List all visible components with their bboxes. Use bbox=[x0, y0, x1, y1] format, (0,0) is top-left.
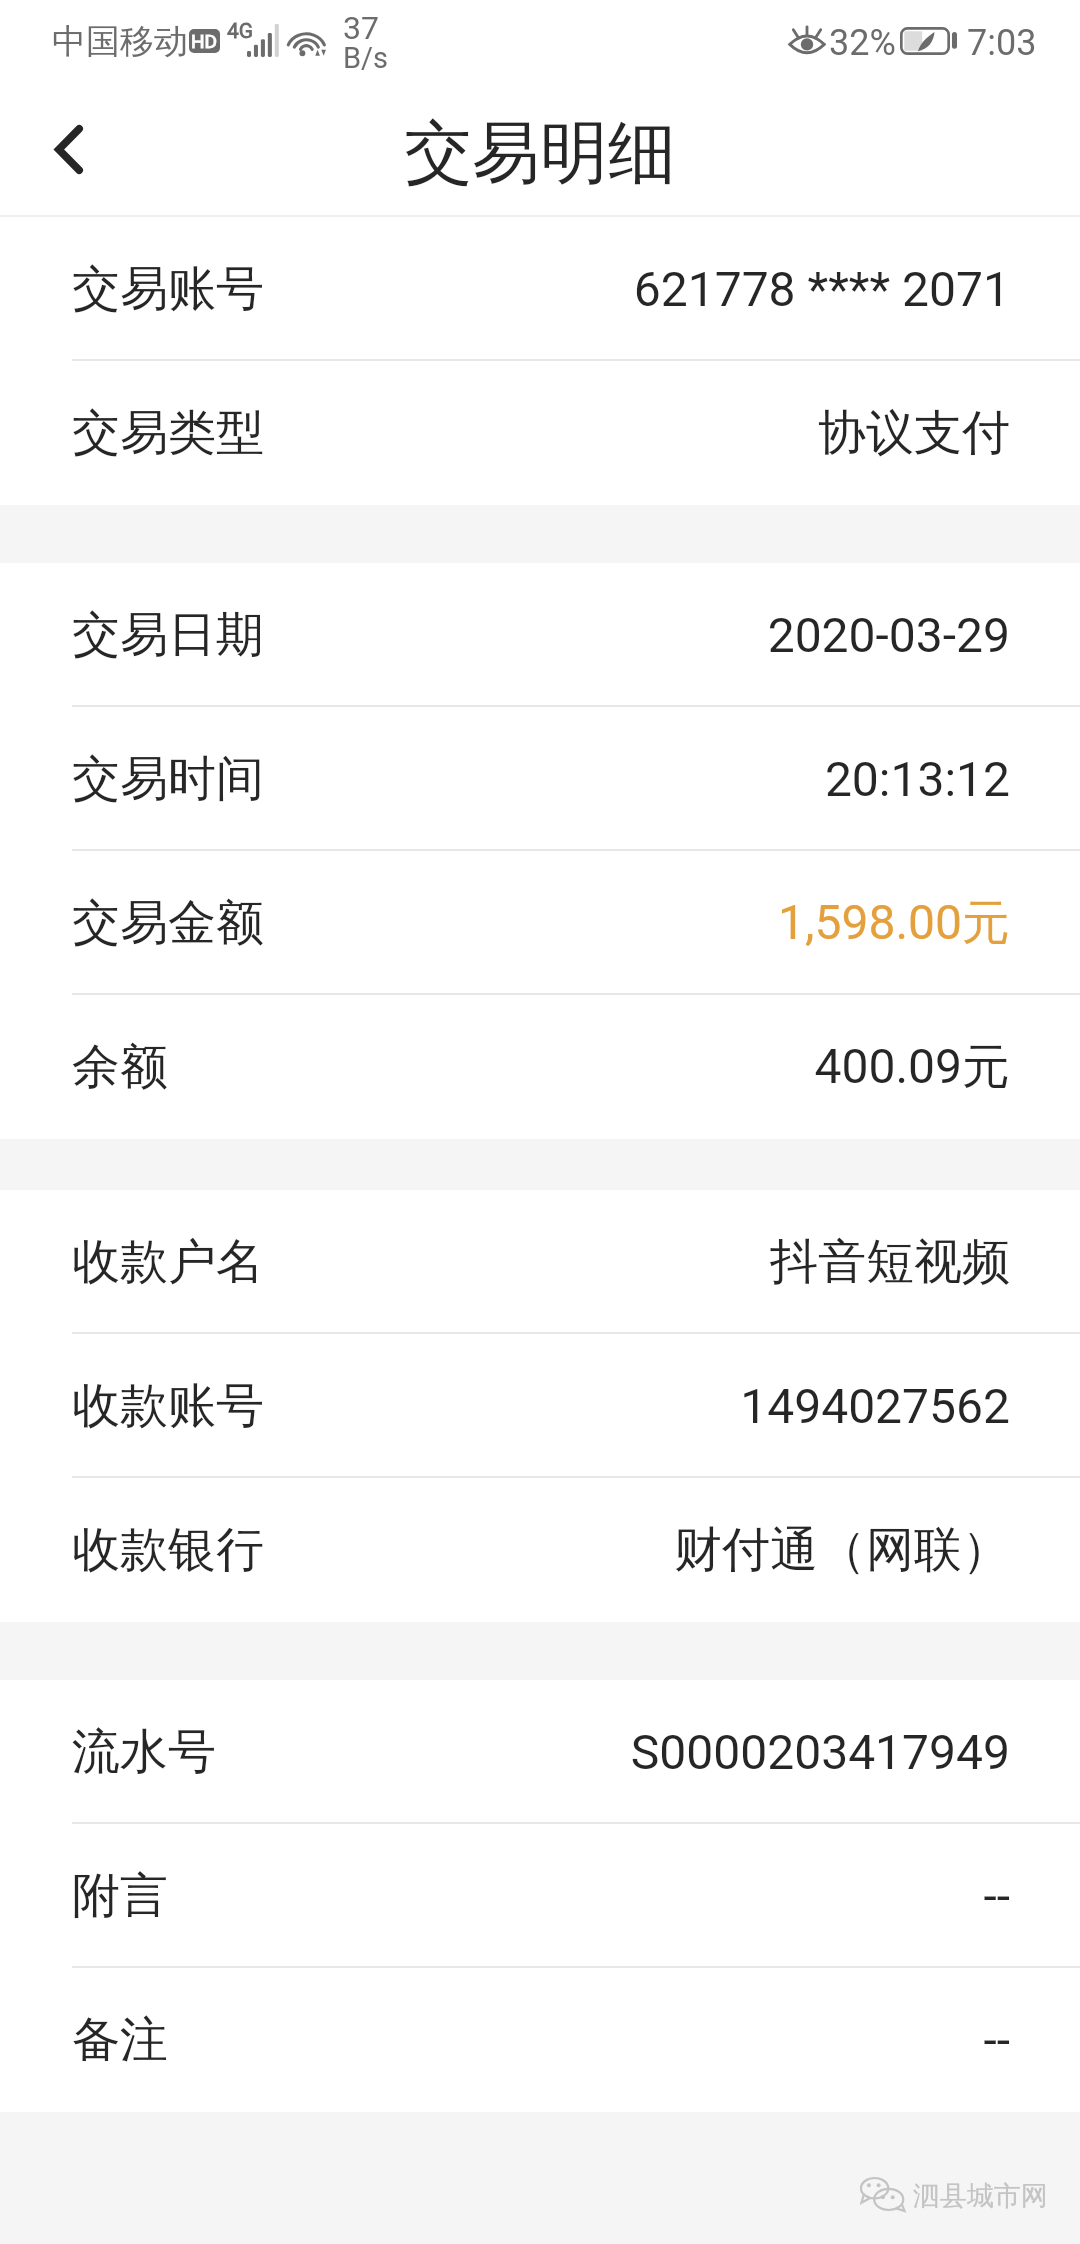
staticText: 交易金额 bbox=[72, 893, 264, 953]
staticText: 交易账号 bbox=[72, 259, 264, 319]
staticText: 400.09元 bbox=[814, 1037, 1010, 1097]
button[interactable]: 备注 bbox=[0, 1968, 1080, 2112]
staticText: 备注 bbox=[72, 2010, 168, 2070]
staticText: 37 bbox=[343, 9, 379, 47]
staticText: 4G bbox=[227, 19, 254, 44]
staticText: 32% bbox=[829, 22, 896, 64]
staticText: 中国移动 bbox=[52, 20, 188, 63]
staticText: HD bbox=[191, 30, 218, 52]
staticText: 交易时间 bbox=[72, 749, 264, 809]
staticText: 协议支付 bbox=[818, 403, 1010, 463]
button[interactable]: 交易类型 bbox=[0, 361, 1080, 505]
staticText: 余额 bbox=[72, 1037, 168, 1097]
staticText: 抖音短视频 bbox=[770, 1232, 1010, 1292]
staticText: 621778 **** 2071 bbox=[633, 261, 1010, 317]
staticText: 2020-03-29 bbox=[767, 607, 1010, 663]
button[interactable]: 流水号 bbox=[0, 1680, 1080, 1824]
button[interactable]: 收款银行 bbox=[0, 1478, 1080, 1622]
staticText: S0000203417949 bbox=[630, 1724, 1010, 1780]
staticText: 财付通（网联） bbox=[674, 1520, 1010, 1580]
staticText: 20:13:12 bbox=[824, 751, 1010, 807]
staticText: 流水号 bbox=[72, 1722, 216, 1782]
staticText: -- bbox=[983, 2012, 1010, 2068]
staticText: 1,598.00元 bbox=[778, 893, 1010, 953]
staticText: 交易日期 bbox=[72, 605, 264, 665]
staticText: 收款账号 bbox=[72, 1376, 264, 1436]
staticText: 交易类型 bbox=[72, 403, 264, 463]
staticText: 收款户名 bbox=[72, 1232, 264, 1292]
button[interactable]: 交易账号 bbox=[0, 217, 1080, 361]
button[interactable]: 余额 bbox=[0, 995, 1080, 1139]
staticText: B/s bbox=[343, 41, 389, 75]
staticText: 附言 bbox=[72, 1866, 168, 1926]
button[interactable]: 交易日期 bbox=[0, 563, 1080, 707]
button[interactable]: 交易时间 bbox=[0, 707, 1080, 851]
staticText: 收款银行 bbox=[72, 1520, 264, 1580]
staticText: 1494027562 bbox=[740, 1378, 1010, 1434]
button[interactable]: 交易金额 bbox=[0, 851, 1080, 995]
button[interactable]: 附言 bbox=[0, 1824, 1080, 1968]
staticText: 交易明细 bbox=[404, 111, 676, 197]
staticText: 7:03 bbox=[967, 22, 1037, 64]
button[interactable]: Back bbox=[0, 90, 136, 217]
staticText: -- bbox=[983, 1868, 1010, 1924]
button[interactable]: 收款账号 bbox=[0, 1334, 1080, 1478]
staticText: 泗县城市网 bbox=[913, 2179, 1048, 2213]
button[interactable]: 收款户名 bbox=[0, 1190, 1080, 1334]
